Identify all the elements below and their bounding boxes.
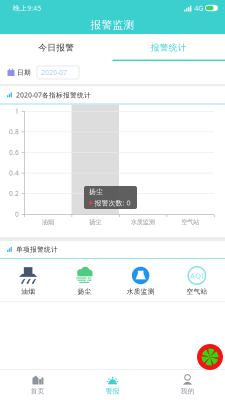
- staticText: 0.4: [9, 169, 19, 177]
- staticText: 2020-07: [41, 68, 67, 77]
- button[interactable]: 报警统计: [112, 34, 225, 61]
- staticText: 扬尘: [77, 287, 91, 296]
- staticText: 油烟: [21, 287, 35, 296]
- staticText: 首页: [30, 387, 44, 395]
- staticText: 警报: [105, 387, 119, 395]
- staticText: [31, 67, 37, 77]
- button[interactable]: 扫一扫: [197, 344, 223, 370]
- staticText: 空气站: [186, 287, 207, 296]
- button[interactable]: 警报: [75, 370, 150, 400]
- staticText: 空气站: [181, 218, 199, 226]
- staticText: 0.6: [9, 148, 19, 157]
- staticText: 日期: [15, 68, 31, 77]
- staticText: 今日报警: [38, 42, 74, 53]
- button[interactable]: 首页: [0, 370, 75, 400]
- staticText: 报警统计: [151, 42, 187, 53]
- staticText: 扬尘: [89, 187, 103, 196]
- button[interactable]: 水质监测: [112, 265, 169, 298]
- staticText: 晚上9:45: [13, 3, 41, 13]
- staticText: 水质监测: [127, 287, 155, 296]
- staticText: [203, 3, 205, 13]
- staticText: 1: [15, 107, 19, 115]
- button[interactable]: 我的: [150, 370, 225, 400]
- staticText: 2020-07各指标报警统计: [12, 90, 91, 100]
- staticText: AQI: [190, 270, 204, 281]
- button[interactable]: 扬尘: [56, 265, 112, 298]
- staticText: 报警监测: [90, 18, 134, 32]
- staticText: 0.8: [9, 127, 19, 136]
- staticText: 单项报警统计: [12, 245, 58, 254]
- staticText: 我的: [180, 387, 194, 395]
- staticText: 扬尘: [89, 218, 101, 226]
- button[interactable]: 油烟: [0, 265, 56, 298]
- staticText: 水质监测: [131, 218, 155, 226]
- button[interactable]: AQI: [169, 265, 225, 298]
- button[interactable]: 2020-07: [37, 66, 79, 79]
- staticText: 4G: [192, 3, 203, 13]
- staticText: 0.2: [9, 189, 19, 198]
- staticText: 报警次数: 0: [92, 198, 130, 207]
- button[interactable]: 今日报警: [0, 34, 112, 61]
- staticText: 油烟: [42, 218, 54, 226]
- staticText: 0: [15, 210, 19, 218]
